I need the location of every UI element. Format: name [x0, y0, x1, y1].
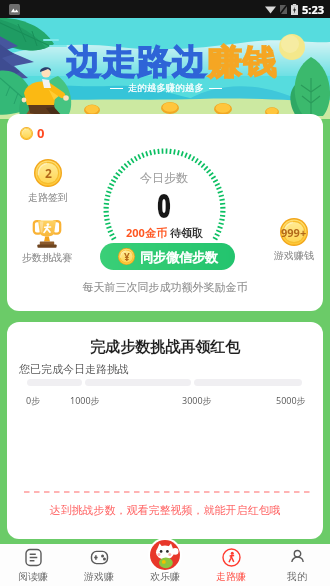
- staticText: 999+: [281, 225, 307, 240]
- staticText: 200金币: [126, 225, 167, 240]
- staticText: 0: [37, 124, 45, 142]
- staticText: 待领取: [167, 225, 203, 240]
- staticText: 我的: [287, 570, 307, 583]
- staticText: 0: [50, 183, 278, 228]
- staticText: 同步微信步数: [140, 249, 218, 265]
- staticText: 赚钱: [207, 41, 278, 84]
- staticText: 2: [45, 165, 52, 181]
- staticText: 走路签到: [28, 191, 68, 204]
- button[interactable]: 欢乐赚: [132, 544, 198, 586]
- button[interactable]: ¥: [100, 243, 235, 270]
- button[interactable]: 游戏赚: [66, 544, 132, 586]
- staticText: 完成步数挑战再领红包: [7, 338, 323, 357]
- staticText: 1000步: [70, 394, 100, 406]
- button[interactable]: 走路赚: [198, 544, 264, 586]
- staticText: 走路赚: [216, 570, 246, 583]
- staticText: 欢乐赚: [150, 570, 180, 583]
- button[interactable]: 步数挑战赛: [22, 218, 72, 264]
- button[interactable]: 欢乐赚: [148, 538, 182, 572]
- staticText: 阅读赚: [18, 570, 48, 583]
- staticText: 边走路边: [66, 41, 207, 84]
- button[interactable]: 我的: [264, 544, 330, 586]
- staticText: 走的越多赚的越多: [128, 82, 204, 94]
- staticText: 每天前三次同步成功额外奖励金币: [7, 280, 323, 294]
- staticText: 3000步: [182, 394, 212, 406]
- staticText: 0步: [26, 394, 41, 406]
- staticText: 游戏赚: [84, 570, 114, 583]
- staticText: 游戏赚钱: [274, 249, 314, 262]
- staticText: ¥: [124, 250, 130, 264]
- staticText: 达到挑战步数，观看完整视频，就能开启红包哦: [7, 503, 323, 517]
- staticText: 5000步: [276, 394, 306, 406]
- button[interactable]: 游戏赚钱: [274, 218, 314, 262]
- staticText: 5:23: [302, 2, 324, 17]
- staticText: 今日步数: [7, 170, 322, 185]
- button[interactable]: 走路签到: [28, 159, 68, 204]
- button[interactable]: 阅读赚: [0, 544, 66, 586]
- staticText: 步数挑战赛: [22, 251, 72, 264]
- staticText: 您已完成今日走路挑战: [19, 362, 129, 376]
